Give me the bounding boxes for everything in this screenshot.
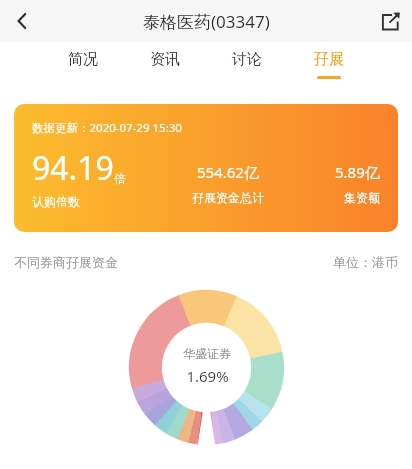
staticText: 554.62亿 — [197, 162, 259, 182]
staticText: 5.89亿 — [335, 162, 380, 182]
staticText: 孖展资金总计 — [192, 190, 264, 205]
button[interactable]: 简况 — [53, 46, 113, 83]
staticText: 不同券商孖展资金 — [14, 254, 118, 270]
staticText: 认购倍数 — [32, 194, 80, 209]
button[interactable]: Share — [368, 0, 412, 42]
staticText: 1.69% — [186, 366, 229, 386]
staticText: 资讯 — [150, 50, 180, 69]
staticText: 孖展 — [314, 50, 344, 69]
staticText: 讨论 — [232, 50, 262, 69]
button[interactable]: 数据更新：2020-07-29 15:30 — [14, 104, 398, 232]
staticText: 倍 — [114, 171, 126, 186]
staticText: 华盛证券 — [183, 346, 231, 361]
staticText: 94.19 — [32, 146, 114, 190]
button[interactable]: 讨论 — [217, 46, 277, 83]
button[interactable]: 资讯 — [135, 46, 195, 83]
button[interactable]: 孖展 — [299, 46, 359, 83]
staticText: 简况 — [68, 50, 98, 69]
staticText: 泰格医药(03347) — [143, 10, 270, 33]
staticText: 单位：港币 — [333, 254, 398, 270]
button[interactable]: Back — [0, 0, 44, 42]
staticText: 集资额 — [344, 190, 380, 205]
staticText: 数据更新：2020-07-29 15:30 — [32, 120, 182, 136]
